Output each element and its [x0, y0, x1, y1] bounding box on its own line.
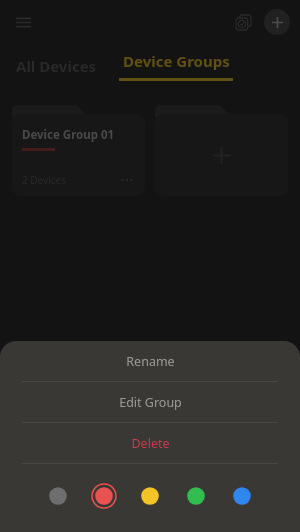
staticText: Edit Group: [119, 394, 182, 411]
button[interactable]: Green colour: [183, 483, 209, 509]
button[interactable]: Delete: [0, 423, 300, 463]
button[interactable]: Red colour: [91, 483, 117, 509]
button[interactable]: Edit Group: [0, 382, 300, 422]
button[interactable]: Device Group 01: [12, 105, 145, 196]
staticText: 2 Devices: [22, 173, 66, 187]
button[interactable]: Device Groups: [119, 44, 233, 88]
button[interactable]: Select devices: [228, 7, 258, 37]
button[interactable]: Grey colour: [45, 483, 71, 509]
button[interactable]: All Devices: [16, 44, 97, 88]
button[interactable]: Menu: [6, 5, 40, 39]
staticText: Device Group 01: [22, 127, 115, 143]
staticText: Rename: [126, 353, 175, 370]
button[interactable]: [0, 0, 300, 532]
button[interactable]: Yellow colour: [137, 483, 163, 509]
button[interactable]: Blue colour: [229, 483, 255, 509]
staticText: Device Groups: [123, 51, 230, 71]
staticText: Delete: [131, 435, 170, 452]
button[interactable]: Rename: [0, 341, 300, 381]
button[interactable]: Add: [264, 9, 290, 35]
staticText: All Devices: [16, 56, 97, 76]
